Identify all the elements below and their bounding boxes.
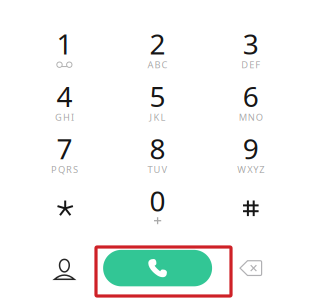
staticText: G H I bbox=[55, 111, 74, 123]
button[interactable]: 2 bbox=[111, 23, 204, 76]
button[interactable]: 0 bbox=[111, 181, 204, 233]
staticText: A B C bbox=[148, 58, 168, 71]
button[interactable]: 1 bbox=[18, 23, 111, 76]
button[interactable]: 4 bbox=[18, 76, 111, 128]
staticText: 5 bbox=[150, 77, 166, 115]
staticText: T U V bbox=[148, 163, 168, 176]
staticText: 4 bbox=[56, 77, 72, 115]
button[interactable]: Contacts bbox=[18, 246, 111, 290]
button[interactable]: 9 bbox=[204, 128, 297, 181]
button[interactable]: 8 bbox=[111, 128, 204, 181]
staticText: 6 bbox=[243, 77, 259, 115]
button[interactable]: 5 bbox=[111, 76, 204, 128]
staticText: 0 bbox=[150, 182, 166, 219]
staticText: 1 bbox=[56, 25, 72, 62]
staticText: D E F bbox=[241, 58, 260, 71]
staticText: 9 bbox=[243, 130, 259, 167]
staticText: P Q R S bbox=[51, 163, 78, 176]
button[interactable]: Star bbox=[18, 181, 111, 233]
staticText: 7 bbox=[56, 130, 72, 167]
button[interactable]: Delete bbox=[204, 246, 297, 290]
staticText: W X Y Z bbox=[237, 163, 264, 176]
staticText: M N O bbox=[239, 111, 263, 123]
button[interactable]: 6 bbox=[204, 76, 297, 128]
button[interactable]: 7 bbox=[18, 128, 111, 181]
button[interactable]: Call bbox=[111, 246, 204, 290]
staticText: J K L bbox=[150, 111, 166, 123]
staticText: 2 bbox=[150, 25, 166, 62]
staticText: 8 bbox=[150, 130, 166, 167]
button[interactable]: 3 bbox=[204, 23, 297, 76]
staticText: 3 bbox=[243, 25, 259, 62]
button[interactable]: Pound bbox=[204, 181, 297, 233]
